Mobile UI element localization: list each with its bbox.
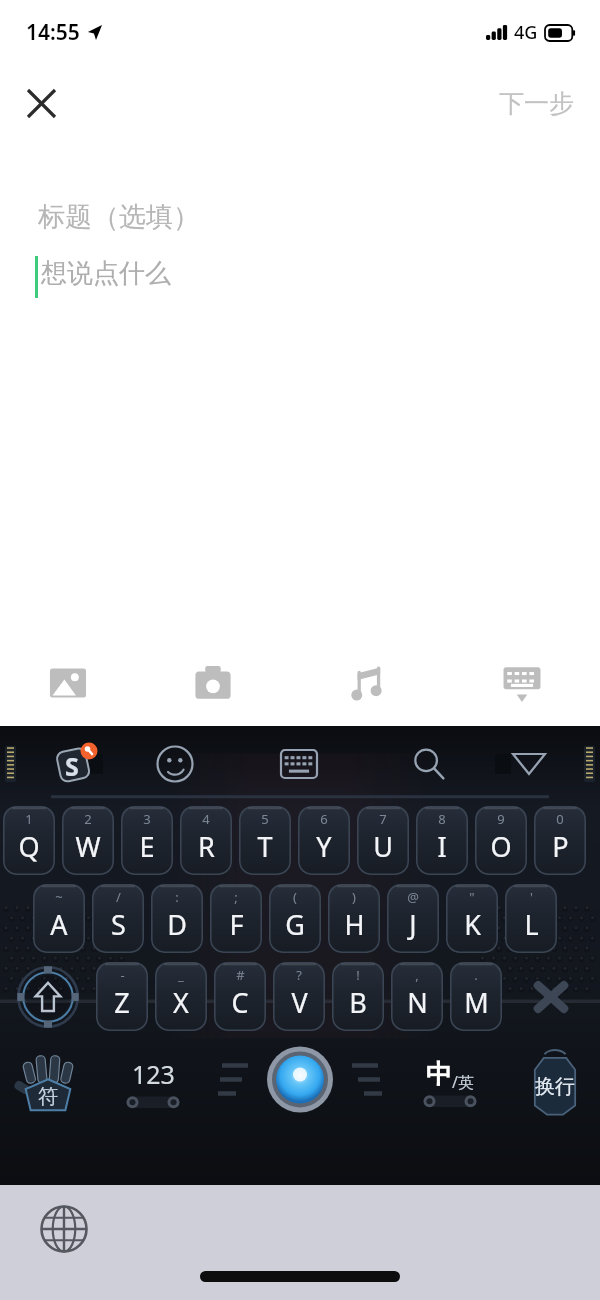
staticText: 2	[84, 810, 92, 828]
staticText: O	[490, 828, 512, 865]
button[interactable]: @	[387, 884, 439, 953]
staticText: G	[285, 906, 305, 943]
button[interactable]: Switch language	[28, 1193, 100, 1265]
staticText: W	[75, 828, 101, 865]
staticText: 1	[25, 810, 33, 828]
staticText: /	[116, 888, 121, 906]
button[interactable]: Symbols	[0, 1039, 96, 1127]
button[interactable]: 中	[390, 1039, 510, 1127]
button[interactable]: #	[214, 962, 266, 1031]
staticText: C	[231, 984, 249, 1021]
button[interactable]: ?	[273, 962, 325, 1031]
button[interactable]: -	[96, 962, 148, 1031]
staticText: !	[356, 966, 360, 984]
button[interactable]: 2	[62, 806, 114, 875]
staticText: 下一步	[499, 88, 574, 119]
button[interactable]: Keyboard layout	[273, 738, 325, 790]
staticText: S	[111, 906, 126, 943]
staticText: E	[139, 828, 155, 865]
button[interactable]: .	[450, 962, 502, 1031]
staticText: -	[120, 966, 125, 984]
staticText: K	[464, 906, 481, 943]
button[interactable]: 7	[357, 806, 409, 875]
staticText: 0	[556, 810, 564, 828]
staticText: #	[236, 966, 245, 984]
button[interactable]: Space	[210, 1039, 390, 1127]
button[interactable]: Close	[14, 76, 68, 130]
staticText: _	[178, 966, 184, 984]
staticText: ~	[55, 888, 63, 906]
staticText: 换行	[535, 1074, 575, 1099]
staticText: )	[352, 888, 356, 906]
staticText: 4G	[514, 20, 538, 45]
staticText: Q	[18, 828, 40, 865]
button[interactable]: '	[505, 884, 557, 953]
staticText: 符	[38, 1084, 58, 1109]
button[interactable]: ~	[33, 884, 85, 953]
button[interactable]: Backspace	[502, 962, 600, 1031]
staticText: ,	[415, 966, 419, 984]
staticText: ?	[296, 966, 302, 984]
button[interactable]: ;	[210, 884, 262, 953]
staticText: S	[65, 749, 79, 783]
staticText: V	[291, 984, 308, 1021]
staticText: ;	[234, 888, 238, 906]
staticText: T	[257, 828, 273, 865]
button[interactable]: Camera	[135, 640, 291, 726]
staticText: A	[50, 906, 68, 943]
button[interactable]: 123	[96, 1039, 210, 1127]
staticText: 123	[132, 1057, 175, 1091]
staticText: F	[229, 906, 244, 943]
staticText: 6	[320, 810, 328, 828]
staticText: N	[407, 984, 428, 1021]
button[interactable]: Music	[291, 640, 444, 726]
button[interactable]: 9	[475, 806, 527, 875]
staticText: (	[293, 888, 297, 906]
staticText: 4	[202, 810, 210, 828]
button[interactable]: Search	[406, 741, 452, 787]
button[interactable]: (	[269, 884, 321, 953]
button[interactable]: 1	[3, 806, 55, 875]
staticText: 3	[143, 810, 151, 828]
staticText: D	[167, 906, 187, 943]
staticText: B	[349, 984, 367, 1021]
staticText: L	[524, 906, 539, 943]
button[interactable]: Shift	[0, 962, 96, 1031]
button[interactable]: /	[92, 884, 144, 953]
button[interactable]: Sogou menu	[52, 739, 102, 789]
staticText: 5	[261, 810, 269, 828]
staticText: H	[344, 906, 365, 943]
button[interactable]: Emoji	[152, 741, 198, 787]
button[interactable]: 3	[121, 806, 173, 875]
button[interactable]: !	[332, 962, 384, 1031]
button[interactable]: _	[155, 962, 207, 1031]
button[interactable]: Hide keyboard	[444, 640, 600, 726]
button[interactable]: 0	[534, 806, 586, 875]
button[interactable]: 6	[298, 806, 350, 875]
staticText: 想说点什么	[41, 257, 171, 290]
staticText: X	[173, 984, 189, 1021]
button[interactable]: 4	[180, 806, 232, 875]
button[interactable]: 换行	[510, 1039, 600, 1127]
staticText: Z	[114, 984, 130, 1021]
staticText: :	[175, 888, 179, 906]
button[interactable]: )	[328, 884, 380, 953]
button[interactable]: Hide keyboard	[506, 741, 552, 787]
button[interactable]: 下一步	[485, 80, 588, 127]
staticText: 9	[497, 810, 505, 828]
staticText: M	[464, 984, 489, 1021]
button[interactable]: 5	[239, 806, 291, 875]
button[interactable]: 标题（选填）	[0, 142, 600, 640]
staticText: 7	[379, 810, 387, 828]
staticText: .	[474, 966, 478, 984]
staticText: /英	[452, 1071, 474, 1093]
button[interactable]: 8	[416, 806, 468, 875]
staticText: 14:55	[26, 18, 80, 47]
button[interactable]: :	[151, 884, 203, 953]
button[interactable]: "	[446, 884, 498, 953]
button[interactable]: Photo	[0, 640, 135, 726]
staticText: 中	[426, 1058, 452, 1091]
button[interactable]: ,	[391, 962, 443, 1031]
staticText: 8	[438, 810, 446, 828]
staticText: @	[407, 888, 419, 906]
